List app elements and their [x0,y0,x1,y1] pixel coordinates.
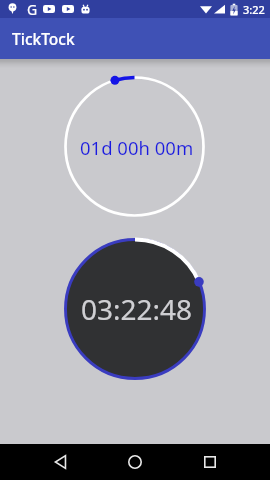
button[interactable]: Home [115,444,155,480]
button[interactable]: Recents [190,444,230,480]
staticText: 01d 00h 00m [80,135,194,160]
staticText: TickTock [12,28,75,49]
staticText: 03:22:48 [81,290,193,328]
staticText: 3:22 [243,2,265,17]
button[interactable]: 01d 00h 00m [64,76,205,217]
button[interactable]: Back [40,444,81,480]
staticText: G [27,0,38,18]
button[interactable]: 03:22:48 [64,238,206,380]
